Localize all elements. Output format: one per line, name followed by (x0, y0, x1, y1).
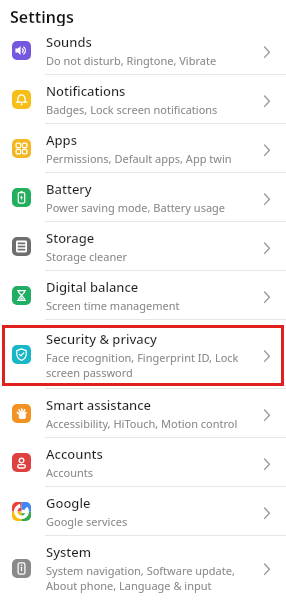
staticText: Smart assistance (46, 396, 152, 414)
button[interactable]: Notifications (0, 75, 286, 124)
staticText: About phone, Language & input (46, 578, 212, 593)
staticText: Notifications (46, 82, 126, 100)
staticText: Face recognition, Fingerprint ID, Lock (46, 350, 239, 365)
staticText: screen password (46, 365, 133, 380)
button[interactable]: Digital balance (0, 271, 286, 320)
staticText: Sounds (46, 33, 92, 51)
button[interactable]: Apps (0, 124, 286, 173)
staticText: Storage cleaner (46, 249, 128, 264)
staticText: Battery (46, 180, 92, 198)
staticText: Permissions, Default apps, App twin (46, 151, 232, 166)
button[interactable]: Accounts (0, 438, 286, 487)
button[interactable]: Storage (0, 222, 286, 271)
staticText: System (46, 543, 92, 561)
staticText: Do not disturb, Ringtone, Vibrate (46, 53, 217, 68)
staticText: Power saving mode, Battery usage (46, 200, 226, 215)
staticText: Security & privacy (46, 330, 157, 348)
staticText: Google (46, 494, 91, 512)
button[interactable]: Google (0, 487, 286, 536)
staticText: Accounts (46, 445, 103, 463)
button[interactable]: Sounds (0, 26, 286, 75)
button[interactable]: Smart assistance (0, 389, 286, 438)
staticText: Accessibility, HiTouch, Motion control (46, 416, 238, 431)
staticText: Badges, Lock screen notifications (46, 102, 218, 117)
staticText: Google services (46, 514, 128, 529)
staticText: Accounts (46, 465, 94, 480)
staticText: Settings (10, 6, 74, 26)
staticText: Storage (46, 229, 95, 247)
button[interactable]: Security & privacy (0, 320, 286, 389)
staticText: Screen time management (46, 298, 180, 313)
staticText: Digital balance (46, 278, 139, 296)
button[interactable]: System (0, 536, 286, 600)
staticText: System navigation, Software update, (46, 563, 235, 578)
button[interactable]: Battery (0, 173, 286, 222)
staticText: Apps (46, 131, 77, 149)
